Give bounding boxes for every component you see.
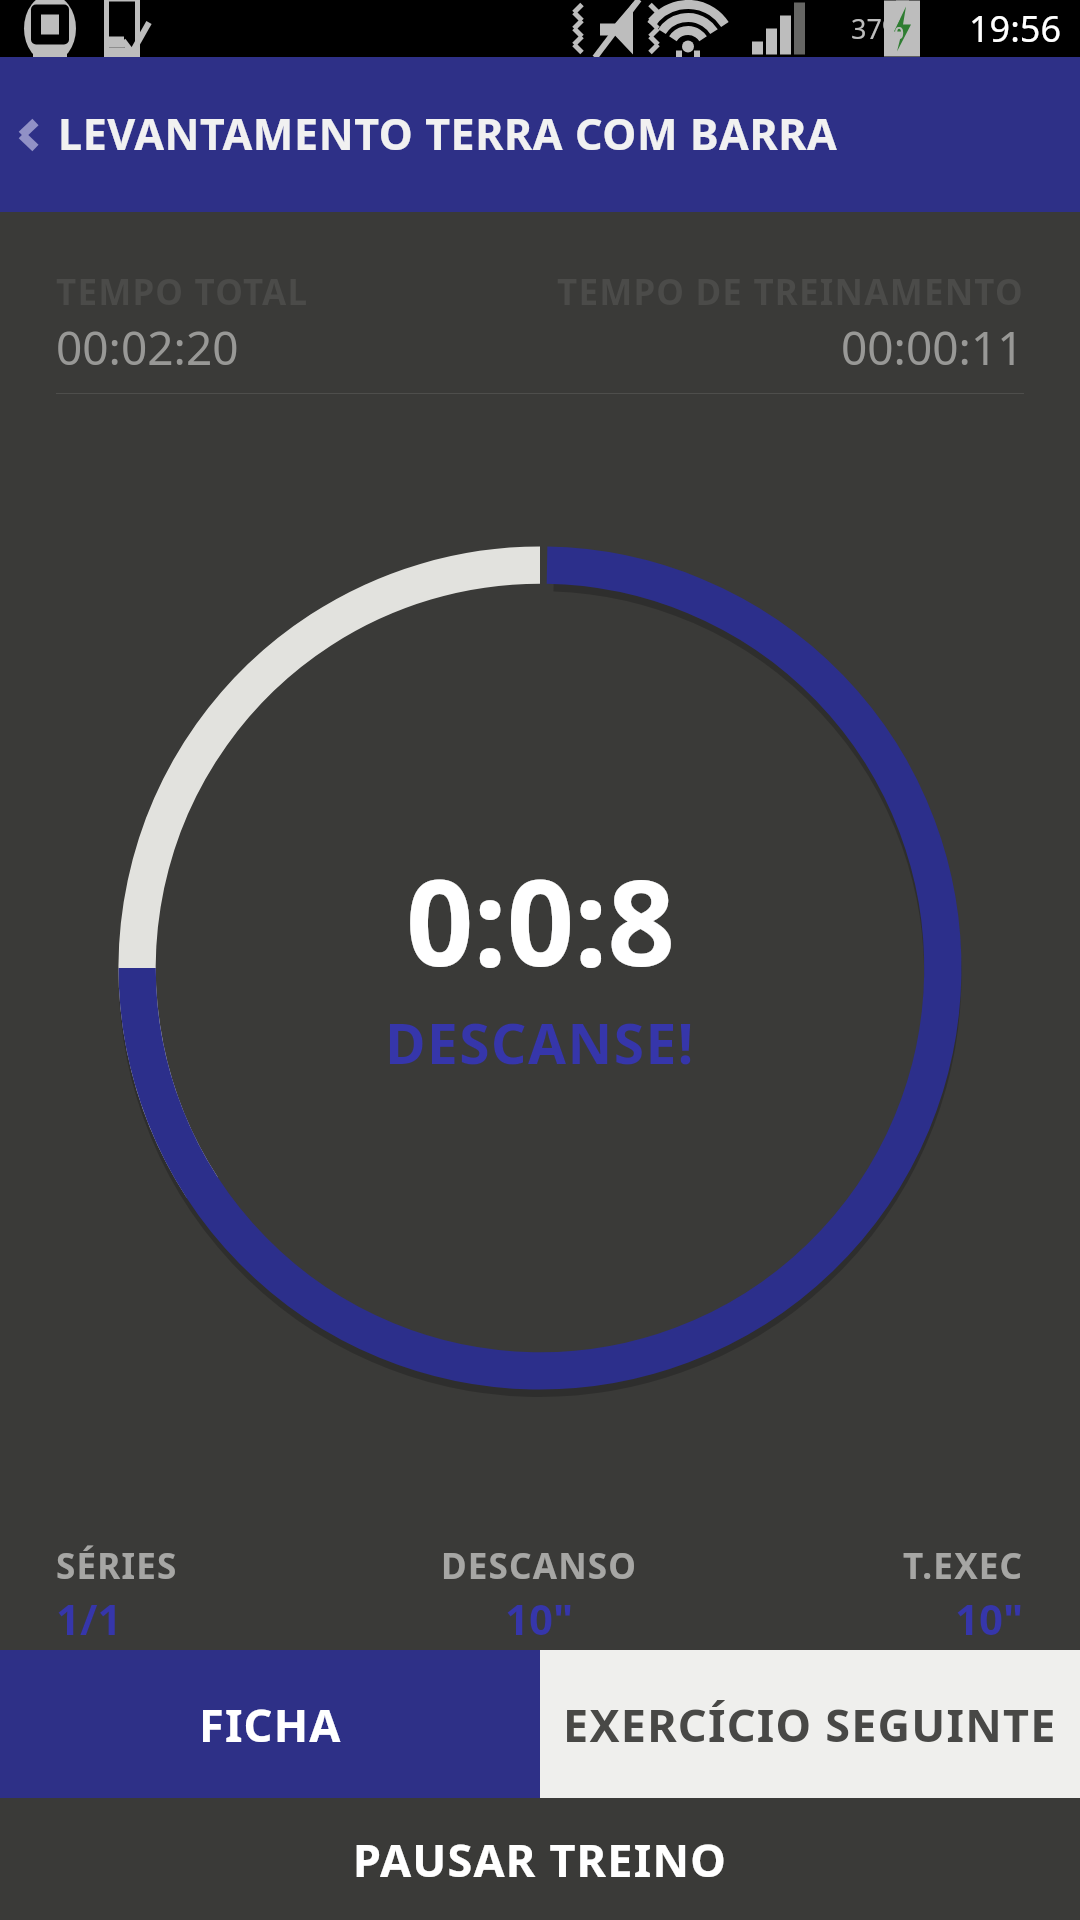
staticText: SÉRIES: [56, 1542, 178, 1590]
staticText: TEMPO DE TREINAMENTO: [557, 268, 1024, 316]
staticText: 1/1: [56, 1590, 122, 1647]
staticText: 00:00:11: [841, 316, 1024, 379]
button[interactable]: PAUSAR TREINO: [0, 1798, 1080, 1920]
staticText: LEVANTAMENTO TERRA COM BARRA: [58, 104, 838, 163]
staticText: DESCANSE!: [385, 1005, 695, 1080]
staticText: 37%: [851, 10, 905, 47]
button[interactable]: Back: [0, 57, 58, 212]
staticText: FICHA: [199, 1694, 342, 1755]
staticText: 00:02:20: [56, 316, 239, 379]
staticText: 10": [505, 1590, 574, 1647]
staticText: EXERCÍCIO SEGUINTE: [563, 1694, 1057, 1755]
button[interactable]: FICHA: [0, 1650, 540, 1798]
staticText: 0:0:8: [406, 840, 675, 1001]
staticText: PAUSAR TREINO: [353, 1829, 727, 1890]
staticText: T.EXEC: [903, 1542, 1024, 1590]
staticText: DESCANSO: [441, 1542, 638, 1590]
staticText: TEMPO TOTAL: [56, 268, 309, 316]
staticText: 19:56: [969, 4, 1062, 53]
staticText: 10": [955, 1590, 1024, 1647]
button[interactable]: EXERCÍCIO SEGUINTE: [540, 1650, 1080, 1798]
